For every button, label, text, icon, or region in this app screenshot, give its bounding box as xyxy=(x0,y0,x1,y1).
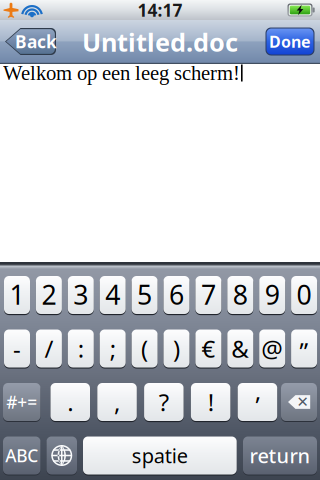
staticText: spatie xyxy=(132,442,188,469)
staticText: 0 xyxy=(297,277,312,312)
button[interactable]: 8 xyxy=(227,276,253,314)
button[interactable]: 6 xyxy=(163,276,189,314)
button[interactable]: 2 xyxy=(36,276,62,314)
staticText: 9 xyxy=(265,277,280,312)
button[interactable]: ; xyxy=(100,329,126,367)
button[interactable]: 7 xyxy=(195,276,221,314)
staticText: Back xyxy=(15,30,57,53)
staticText: . xyxy=(67,386,73,418)
button[interactable]: ! xyxy=(191,383,230,421)
button[interactable]: ) xyxy=(163,329,189,367)
button[interactable]: & xyxy=(227,329,253,367)
staticText: / xyxy=(44,333,53,364)
button[interactable]: ? xyxy=(144,383,184,421)
button[interactable]: ’ xyxy=(238,383,277,421)
staticText: - xyxy=(13,333,21,364)
staticText: 8 xyxy=(233,277,248,312)
staticText: 14:17 xyxy=(137,0,182,21)
staticText: ? xyxy=(159,386,169,418)
staticText: ✕ xyxy=(296,394,308,410)
button[interactable]: 0 xyxy=(291,276,317,314)
button[interactable]: 4 xyxy=(100,276,126,314)
button[interactable]: @ xyxy=(259,329,285,367)
staticText: return xyxy=(249,442,310,469)
staticText: 7 xyxy=(201,277,216,312)
staticText: 6 xyxy=(169,277,184,312)
staticText: 3 xyxy=(73,277,88,312)
button[interactable]: , xyxy=(97,383,137,421)
staticText: ” xyxy=(300,335,309,367)
staticText: ABC xyxy=(5,444,38,467)
button[interactable]: : xyxy=(68,329,94,367)
button[interactable]: ” xyxy=(291,329,317,367)
button[interactable]: Back xyxy=(5,28,56,55)
button[interactable]: / xyxy=(36,329,62,367)
staticText: 4 xyxy=(105,277,120,312)
button[interactable]: . xyxy=(50,383,90,421)
staticText: Done xyxy=(269,31,311,52)
button[interactable]: #+= xyxy=(3,383,40,421)
staticText: & xyxy=(231,333,249,364)
staticText: : xyxy=(78,333,84,364)
button[interactable]: ( xyxy=(132,329,158,367)
button[interactable]: 5 xyxy=(132,276,158,314)
button[interactable]: ABC xyxy=(3,436,40,474)
staticText: 1 xyxy=(9,277,24,312)
staticText: ( xyxy=(141,333,148,364)
button[interactable]: 3 xyxy=(68,276,94,314)
staticText: ! xyxy=(208,386,214,418)
staticText: 2 xyxy=(41,277,56,312)
button[interactable]: Next keyboard xyxy=(46,436,77,474)
button[interactable]: € xyxy=(195,329,221,367)
staticText: 5 xyxy=(137,277,152,312)
button[interactable]: return xyxy=(243,436,317,474)
button[interactable]: - xyxy=(4,329,30,367)
staticText: , xyxy=(114,386,120,418)
button[interactable]: Done xyxy=(265,27,314,55)
button[interactable]: spatie xyxy=(83,436,237,474)
staticText: @ xyxy=(261,333,283,364)
button[interactable]: 9 xyxy=(259,276,285,314)
staticText: ’ xyxy=(255,389,259,421)
staticText: Untitled.doc xyxy=(82,25,238,59)
staticText: #+= xyxy=(6,390,37,413)
staticText: Welkom op een leeg scherm! xyxy=(3,62,240,84)
staticText: ; xyxy=(110,333,116,364)
button[interactable]: Delete xyxy=(281,383,317,421)
button[interactable]: 1 xyxy=(4,276,30,314)
staticText: ) xyxy=(173,333,180,364)
staticText: € xyxy=(201,333,215,364)
